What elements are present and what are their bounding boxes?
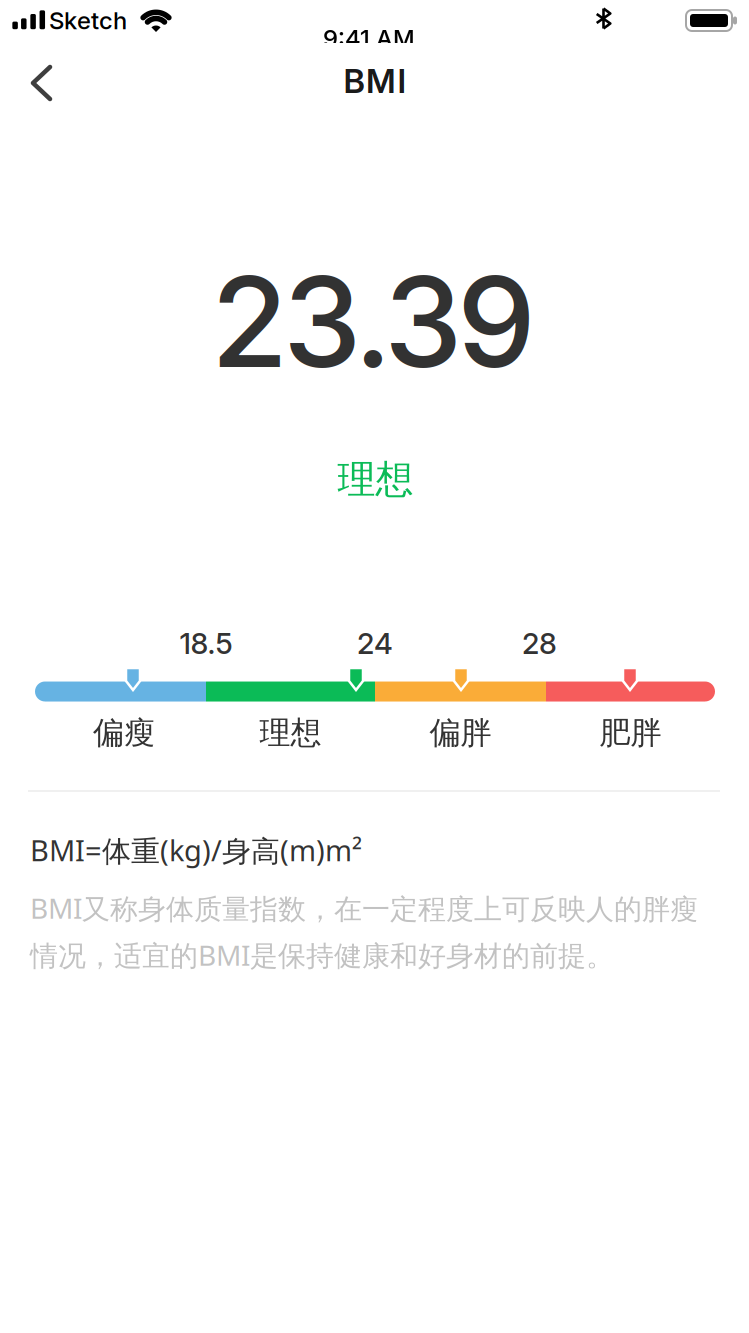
staticText: 情况，适宜的BMI是保持健康和好身材的前提。 [30,936,614,974]
staticText: 偏瘦 [93,713,155,753]
staticText: 偏胖 [429,713,491,753]
staticText: BMI [343,61,406,101]
staticText: 23.39 [211,246,536,397]
staticText: BMI=体重(kg)/身高(m)m² [30,830,362,870]
staticText: 28 [522,626,557,661]
button[interactable]: Back [29,64,55,102]
staticText: BMI又称身体质量指数，在一定程度上可反映人的胖瘦 [30,889,698,927]
staticText: 24 [357,626,393,661]
staticText: Sketch [49,6,127,35]
staticText: 18.5 [179,626,232,661]
staticText: 理想 [259,713,321,753]
staticText: 9:41 AM [323,24,415,53]
staticText: 理想 [337,456,413,503]
staticText: 肥胖 [599,713,661,753]
